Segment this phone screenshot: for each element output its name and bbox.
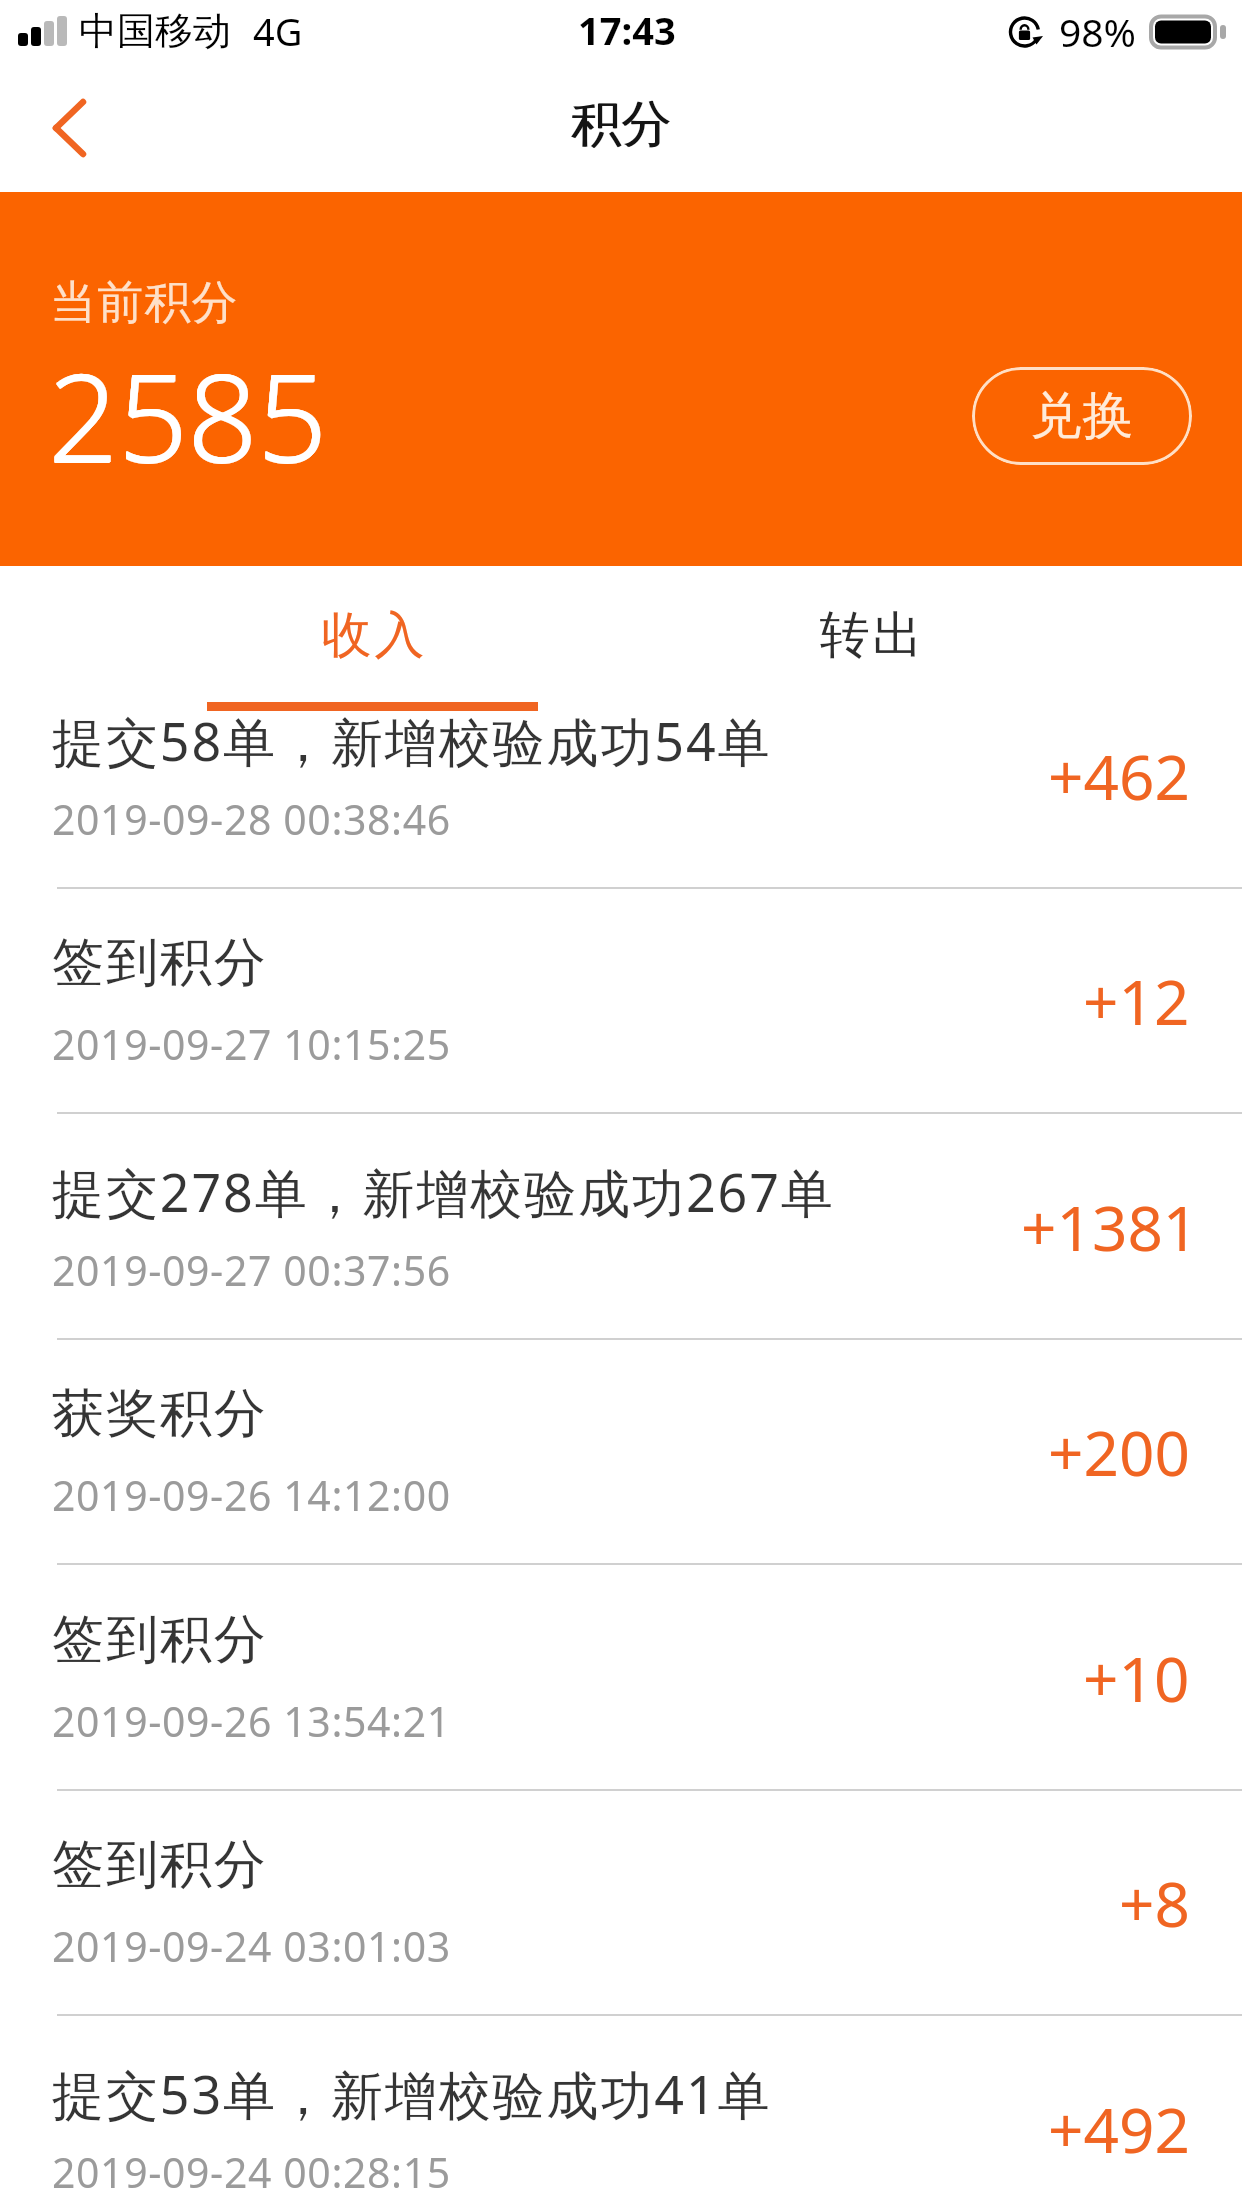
- button[interactable]: 提交58单，新增校验成功54单: [0, 663, 1242, 889]
- staticText: +1381: [1021, 1185, 1199, 1269]
- staticText: 当前积分: [50, 274, 239, 332]
- staticText: 2019-09-28 00:38:46: [52, 791, 451, 847]
- staticText: 2585: [48, 333, 327, 499]
- staticText: 签到积分: [52, 1607, 268, 1673]
- staticText: 兑换: [1030, 384, 1134, 448]
- staticText: 收入: [320, 604, 426, 667]
- staticText: 2019-09-26 14:12:00: [52, 1467, 451, 1523]
- staticText: 获奖积分: [52, 1381, 268, 1447]
- staticText: 积分: [571, 93, 671, 156]
- staticText: +462: [1048, 734, 1190, 818]
- staticText: 提交53单，新增校验成功41单: [52, 2058, 772, 2129]
- staticText: 转出: [818, 604, 924, 667]
- staticText: 签到积分: [52, 930, 268, 996]
- button[interactable]: 提交53单，新增校验成功41单: [0, 2016, 1242, 2208]
- staticText: 提交58单，新增校验成功54单: [52, 705, 772, 776]
- button[interactable]: 转出: [747, 578, 994, 711]
- staticText: 签到积分: [52, 1832, 268, 1898]
- button[interactable]: 签到积分: [0, 888, 1242, 1114]
- staticText: 2019-09-26 13:54:21: [52, 1693, 451, 1749]
- staticText: 2019-09-24 03:01:03: [52, 1918, 451, 1974]
- button[interactable]: 兑换: [972, 367, 1192, 465]
- button[interactable]: 签到积分: [0, 1565, 1242, 1791]
- staticText: 2585: [49, 332, 328, 498]
- staticText: 2585: [48, 332, 327, 498]
- staticText: +10: [1083, 1636, 1190, 1720]
- staticText: 提交278单，新增校验成功267单: [52, 1156, 835, 1227]
- button[interactable]: 提交278单，新增校验成功267单: [0, 1114, 1242, 1340]
- staticText: 中国移动: [79, 7, 231, 55]
- staticText: 2019-09-24 00:28:15: [52, 2144, 451, 2200]
- button[interactable]: 签到积分: [0, 1790, 1242, 2016]
- staticText: +12: [1083, 959, 1190, 1043]
- staticText: +8: [1119, 1861, 1190, 1945]
- button[interactable]: 获奖积分: [0, 1339, 1242, 1565]
- button[interactable]: 收入: [249, 578, 496, 711]
- staticText: 2019-09-27 10:15:25: [52, 1016, 451, 1072]
- staticText: 积分: [572, 93, 672, 156]
- button[interactable]: Back: [0, 70, 136, 192]
- staticText: 98%: [1059, 5, 1137, 58]
- staticText: 2019-09-27 00:37:56: [52, 1242, 451, 1298]
- staticText: +492: [1048, 2087, 1190, 2171]
- staticText: 4G: [253, 5, 303, 57]
- staticText: +200: [1048, 1410, 1190, 1494]
- staticText: 17:43: [578, 4, 676, 56]
